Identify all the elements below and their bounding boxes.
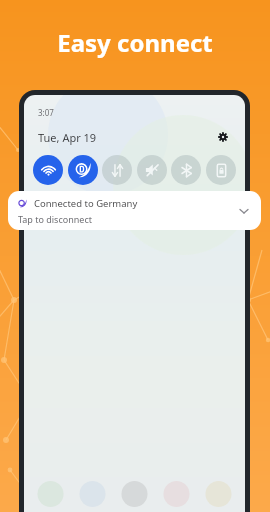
button[interactable]: Mobile data (102, 155, 132, 185)
staticText: Connected to Germany (34, 197, 138, 210)
button[interactable]: Bluetooth (171, 155, 201, 185)
button[interactable]: Wi-Fi (33, 155, 63, 185)
button[interactable]: Connected to Germany (8, 191, 261, 230)
staticText: Easy connect (0, 26, 270, 59)
staticText: Tap to disconnect (18, 213, 92, 225)
button[interactable]: Sound off (137, 155, 167, 185)
button[interactable]: VPN (68, 155, 98, 185)
button[interactable]: Settings (214, 128, 232, 146)
staticText: 3:07 (38, 107, 54, 118)
staticText: Tue, Apr 19 (38, 130, 97, 145)
button[interactable]: Expand (236, 203, 252, 219)
button[interactable]: Auto rotate (206, 155, 236, 185)
